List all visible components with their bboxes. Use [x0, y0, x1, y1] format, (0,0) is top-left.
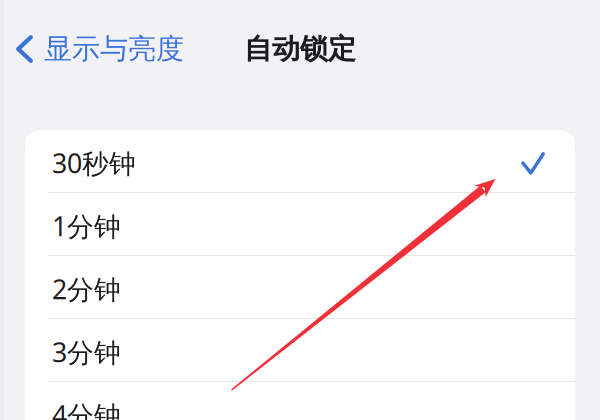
staticText: 2分钟	[52, 271, 121, 307]
staticText: 3分钟	[52, 334, 121, 370]
staticText: 4分钟	[52, 397, 121, 420]
button[interactable]: 显示与亮度	[0, 22, 196, 76]
button[interactable]: 3分钟	[25, 319, 575, 381]
button[interactable]: 2分钟	[25, 256, 575, 318]
button[interactable]: 4分钟	[25, 382, 575, 420]
button[interactable]: 30秒钟	[25, 130, 575, 192]
button[interactable]: 1分钟	[25, 193, 575, 255]
staticText: 自动锁定	[244, 32, 356, 66]
staticText: 显示与亮度	[44, 32, 184, 66]
staticText: 30秒钟	[52, 145, 136, 181]
staticText: 1分钟	[52, 208, 121, 244]
